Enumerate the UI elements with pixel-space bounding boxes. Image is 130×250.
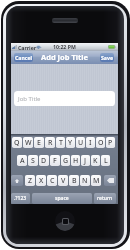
staticText: M: [93, 176, 100, 186]
staticText: F: [53, 156, 57, 166]
button[interactable]: Z: [25, 175, 35, 186]
button[interactable]: B: [69, 175, 79, 186]
button[interactable]: K: [91, 155, 100, 166]
button[interactable]: S: [28, 155, 38, 166]
staticText: I: [89, 138, 92, 148]
staticText: O: [98, 138, 104, 148]
button[interactable]: Job Title: [14, 91, 115, 106]
staticText: Y: [68, 138, 73, 148]
button[interactable]: space: [32, 193, 92, 204]
button[interactable]: L: [101, 155, 110, 166]
button[interactable]: Q: [12, 137, 22, 148]
button[interactable]: Shift: [11, 175, 23, 186]
button[interactable]: A: [17, 155, 27, 166]
button[interactable]: X: [36, 175, 46, 186]
staticText: J: [84, 156, 87, 166]
staticText: return: [97, 195, 113, 202]
staticText: V: [61, 176, 66, 186]
staticText: Z: [28, 176, 33, 186]
button[interactable]: R: [45, 137, 55, 148]
button[interactable]: Backspace: [104, 175, 116, 186]
staticText: 10:22 PM: [53, 43, 76, 50]
button[interactable]: D: [39, 155, 49, 166]
staticText: H: [73, 156, 79, 166]
button[interactable]: Save: [100, 53, 114, 62]
staticText: K: [93, 156, 98, 166]
staticText: P: [108, 138, 113, 148]
button[interactable]: U: [76, 137, 85, 148]
staticText: U: [78, 138, 84, 148]
staticText: Save: [101, 54, 114, 61]
button[interactable]: P: [106, 137, 115, 148]
staticText: D: [41, 156, 47, 166]
button[interactable]: Home: [55, 211, 75, 231]
button[interactable]: F: [50, 155, 60, 166]
button[interactable]: N: [80, 175, 90, 186]
staticText: T: [59, 138, 63, 148]
button[interactable]: return: [94, 193, 116, 204]
button[interactable]: M: [91, 175, 101, 186]
staticText: A: [20, 156, 25, 166]
button[interactable]: Cancel: [14, 53, 33, 62]
staticText: Cancel: [15, 54, 33, 61]
button[interactable]: I: [86, 137, 95, 148]
staticText: Q: [14, 138, 20, 148]
staticText: X: [39, 176, 44, 186]
button[interactable]: V: [58, 175, 68, 186]
button[interactable]: H: [71, 155, 80, 166]
button[interactable]: .?123: [11, 193, 30, 204]
staticText: W: [25, 138, 32, 148]
button[interactable]: W: [23, 137, 33, 148]
staticText: space: [55, 195, 69, 202]
staticText: C: [50, 176, 55, 186]
staticText: E: [37, 138, 41, 148]
staticText: N: [82, 176, 88, 186]
button[interactable]: Y: [66, 137, 75, 148]
staticText: S: [31, 156, 35, 166]
button[interactable]: J: [81, 155, 90, 166]
staticText: .?123: [14, 195, 27, 202]
button[interactable]: T: [56, 137, 65, 148]
staticText: R: [48, 138, 53, 148]
staticText: Job Title: [18, 95, 41, 103]
button[interactable]: O: [96, 137, 105, 148]
staticText: L: [104, 156, 108, 166]
staticText: Add Job Title: [41, 52, 89, 62]
staticText: B: [72, 176, 77, 186]
staticText: G: [63, 156, 69, 166]
button[interactable]: G: [61, 155, 70, 166]
staticText: Carrier: [18, 44, 37, 51]
button[interactable]: E: [34, 137, 44, 148]
button[interactable]: C: [47, 175, 57, 186]
